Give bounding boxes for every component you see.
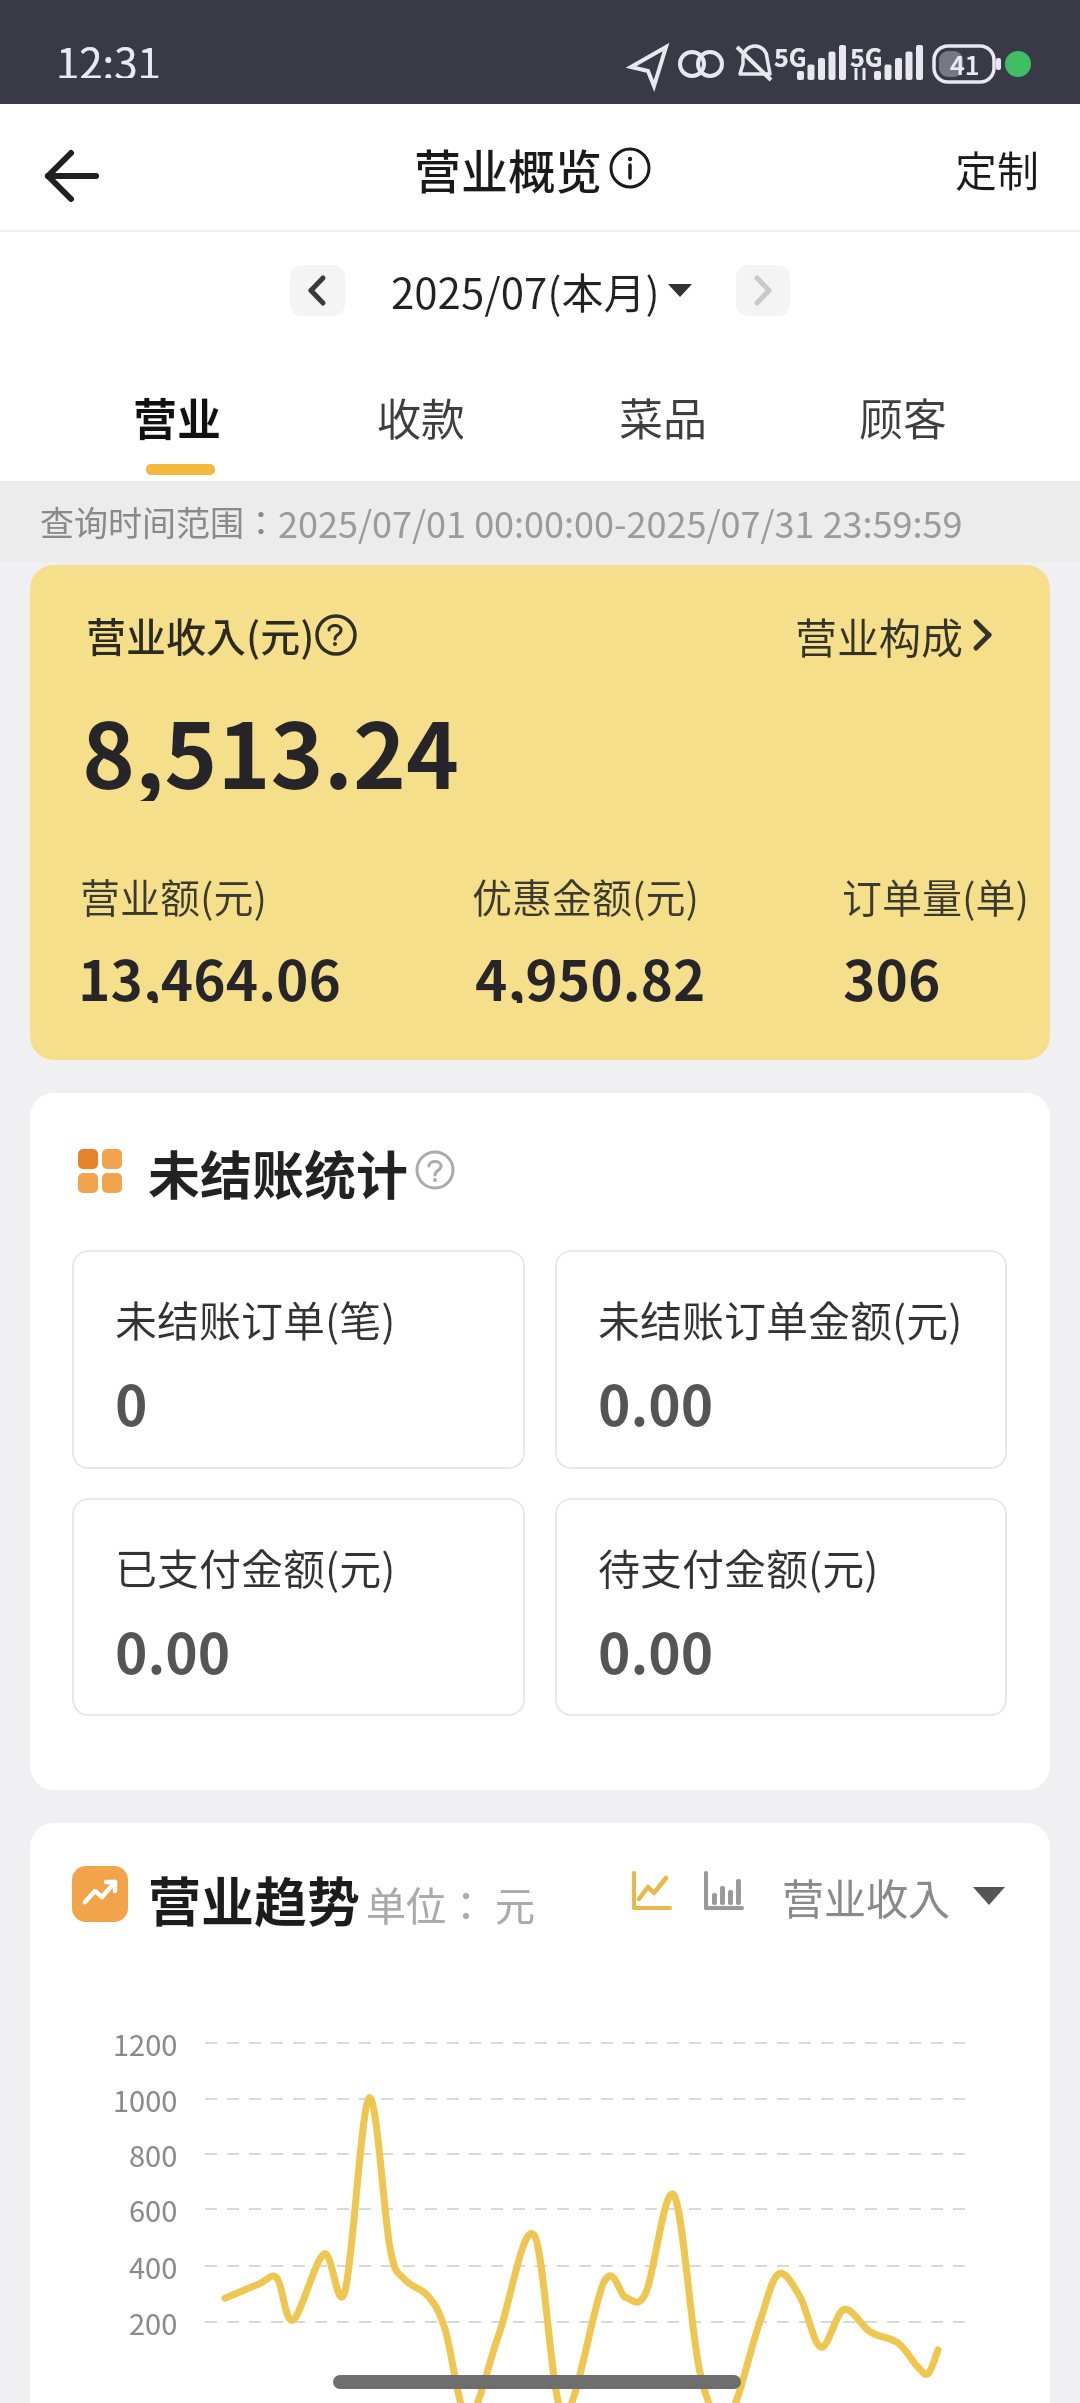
staticText: 1000 bbox=[113, 2078, 178, 2120]
staticText: 营业收入(元) bbox=[86, 606, 315, 664]
staticText: 12:31 bbox=[56, 30, 161, 78]
staticText: 41 bbox=[950, 45, 980, 83]
staticText: 13,464.06 bbox=[78, 937, 341, 1003]
staticText: 2025/07/01 00:00:00-2025/07/31 23:59:59 bbox=[278, 496, 963, 548]
button[interactable] bbox=[626, 1867, 676, 1917]
button[interactable]: 顾客 bbox=[859, 385, 945, 441]
button[interactable]: 未结账订单金额(元) bbox=[555, 1250, 1007, 1469]
button[interactable]: 收款 bbox=[377, 385, 463, 441]
button[interactable]: 2025/07(本月) bbox=[391, 252, 661, 328]
staticText: 优惠金额(元) bbox=[472, 867, 700, 925]
staticText: 未结账统计 bbox=[148, 1135, 409, 1205]
staticText: 营业收入 bbox=[782, 1866, 951, 1927]
staticText: 未结账订单(笔) bbox=[115, 1288, 396, 1346]
staticText: 营业构成 bbox=[795, 605, 964, 666]
staticText: 单位： 元 bbox=[366, 1875, 535, 1925]
staticText: 定制 bbox=[955, 138, 1040, 199]
button[interactable]: 已支付金额(元) bbox=[72, 1498, 525, 1716]
button[interactable] bbox=[24, 144, 120, 208]
button[interactable] bbox=[736, 265, 790, 316]
staticText: 0 bbox=[115, 1362, 148, 1434]
button[interactable]: 待支付金额(元) bbox=[555, 1498, 1007, 1716]
staticText: 待支付金额(元) bbox=[598, 1536, 879, 1594]
staticText: 未结账订单金额(元) bbox=[598, 1288, 963, 1346]
staticText: 1200 bbox=[113, 2022, 178, 2064]
staticText: 4,950.82 bbox=[475, 937, 706, 1003]
staticText: 收款 bbox=[377, 385, 463, 441]
staticText: 营业趋势 bbox=[148, 1861, 360, 1931]
button[interactable] bbox=[290, 265, 345, 316]
staticText: 2025/07(本月) bbox=[391, 260, 660, 321]
staticText: 0.00 bbox=[598, 1362, 714, 1434]
staticText: 8,513.24 bbox=[82, 685, 460, 801]
button[interactable]: 营业收入 bbox=[761, 1863, 1021, 1929]
staticText: 营业额(元) bbox=[80, 867, 268, 925]
button[interactable]: 未结账订单(笔) bbox=[72, 1250, 525, 1469]
staticText: 查询时间范围： bbox=[40, 497, 278, 546]
staticText: 306 bbox=[843, 937, 941, 1003]
staticText: 0.00 bbox=[115, 1610, 231, 1682]
staticText: 600 bbox=[129, 2188, 178, 2230]
button[interactable]: 定制 bbox=[940, 132, 1040, 204]
staticText: 订单量(单) bbox=[842, 867, 1030, 925]
staticText: 菜品 bbox=[619, 385, 705, 441]
staticText: 顾客 bbox=[859, 385, 945, 441]
button[interactable]: 营业构成 bbox=[793, 600, 1005, 670]
staticText: 800 bbox=[129, 2133, 178, 2175]
staticText: 0.00 bbox=[598, 1610, 714, 1682]
button[interactable] bbox=[698, 1867, 748, 1917]
button[interactable]: 菜品 bbox=[619, 385, 705, 441]
staticText: 营业 bbox=[133, 385, 219, 441]
staticText: 400 bbox=[129, 2245, 178, 2287]
button[interactable]: 营业 bbox=[133, 385, 219, 441]
staticText: 营业概览 bbox=[414, 134, 602, 202]
staticText: 5G bbox=[850, 38, 883, 70]
staticText: 200 bbox=[129, 2301, 178, 2343]
staticText: 5G bbox=[774, 38, 807, 70]
staticText: 已支付金额(元) bbox=[115, 1536, 396, 1594]
